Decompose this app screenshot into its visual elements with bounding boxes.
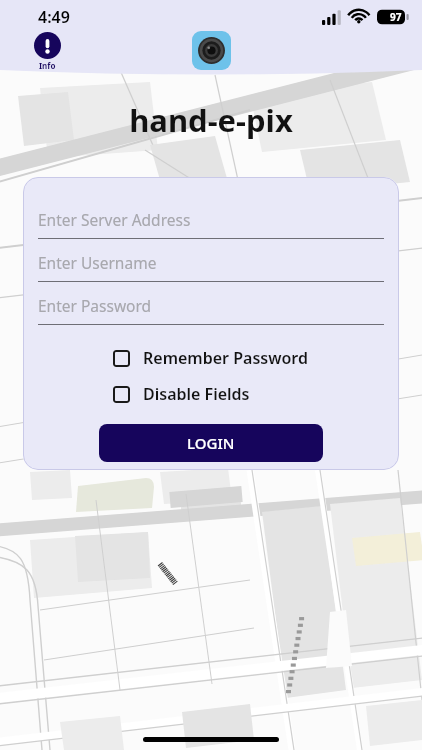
button[interactable]: Enter Server Address (23, 209, 399, 239)
button[interactable]: LOGIN (99, 424, 323, 462)
staticText: Disable Fields (143, 383, 250, 405)
button[interactable]: Enter Password (23, 295, 399, 325)
button[interactable]: Remember Password (111, 345, 310, 371)
staticText: 97 (390, 10, 402, 24)
button[interactable]: Info (30, 30, 65, 73)
button[interactable]: Enter Username (23, 252, 399, 282)
staticText: Remember Password (143, 347, 308, 369)
staticText: Enter Password (38, 295, 152, 316)
staticText: Info (39, 60, 56, 71)
staticText: 4:49 (38, 6, 70, 28)
button[interactable]: Camera (192, 31, 231, 70)
button[interactable]: Disable Fields (111, 381, 252, 407)
staticText: Enter Username (38, 252, 157, 273)
staticText: LOGIN (187, 433, 235, 453)
staticText: Enter Server Address (38, 209, 191, 230)
staticText: hand-e-pix (0, 99, 422, 141)
